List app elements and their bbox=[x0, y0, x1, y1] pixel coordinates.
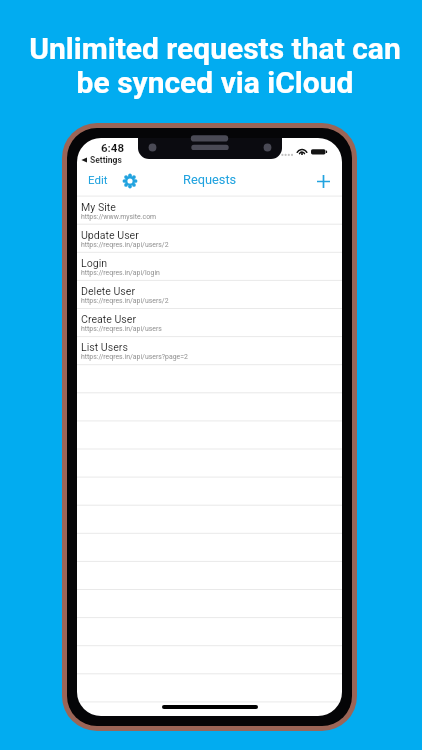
button[interactable] bbox=[77, 364, 342, 392]
button[interactable]: Edit bbox=[88, 173, 108, 186]
staticText: Create User bbox=[81, 313, 137, 325]
staticText: Unlimited requests that can be synced vi… bbox=[4, 31, 422, 100]
button[interactable]: List Users bbox=[77, 336, 342, 364]
button[interactable] bbox=[77, 392, 342, 420]
staticText: https://reqres.in/api/users/2 bbox=[81, 297, 169, 305]
staticText: https://reqres.in/api/users/2 bbox=[81, 241, 169, 249]
button[interactable]: Delete User bbox=[77, 280, 342, 308]
button[interactable]: Settings bbox=[120, 171, 140, 191]
staticText: Settings bbox=[90, 155, 122, 165]
button[interactable]: My Site bbox=[77, 196, 342, 224]
staticText: https://reqres.in/api/login bbox=[81, 269, 160, 277]
staticText: List Users bbox=[81, 341, 128, 353]
staticText: Update User bbox=[81, 229, 139, 241]
staticText: Delete User bbox=[81, 285, 136, 297]
button[interactable] bbox=[77, 505, 342, 533]
button[interactable]: Login bbox=[77, 252, 342, 280]
button[interactable] bbox=[77, 589, 342, 617]
button[interactable] bbox=[77, 645, 342, 673]
button[interactable] bbox=[77, 701, 342, 716]
button[interactable] bbox=[77, 617, 342, 645]
button[interactable] bbox=[77, 673, 342, 701]
button[interactable] bbox=[77, 561, 342, 589]
button[interactable]: Requests bbox=[183, 172, 237, 187]
button[interactable]: Create User bbox=[77, 308, 342, 336]
staticText: My Site bbox=[81, 201, 116, 213]
staticText: Login bbox=[81, 257, 108, 269]
staticText: https://reqres.in/api/users bbox=[81, 325, 162, 333]
staticText: https://reqres.in/api/users?page=2 bbox=[81, 353, 188, 361]
button[interactable]: Back to Settings bbox=[81, 155, 122, 165]
staticText: https://www.mysite.com bbox=[81, 213, 157, 221]
button[interactable]: Update User bbox=[77, 224, 342, 252]
staticText: 6:48 bbox=[101, 141, 125, 154]
button[interactable]: Add request bbox=[313, 171, 333, 191]
button[interactable] bbox=[77, 533, 342, 561]
